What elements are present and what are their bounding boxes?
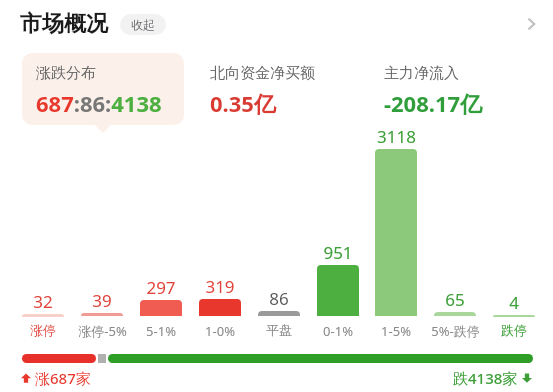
staticText: 1-5%: [381, 322, 411, 340]
button[interactable]: 1-0%: [180, 322, 260, 340]
staticText: 5-1%: [146, 322, 176, 340]
staticText: 0.35亿: [210, 88, 276, 118]
button[interactable]: 主力净流入: [370, 53, 532, 125]
button[interactable]: 涨停: [3, 322, 83, 338]
staticText: 86: [269, 287, 289, 310]
staticText: 北向资金净买额: [210, 64, 315, 83]
button[interactable]: 收起: [120, 14, 166, 35]
staticText: 687:86:4138: [36, 88, 162, 118]
staticText: 涨跌分布: [36, 64, 96, 83]
staticText: 3118: [377, 125, 416, 148]
button[interactable]: 0-1%: [298, 322, 378, 340]
staticText: 跌4138家: [453, 368, 518, 388]
button[interactable]: 1-5%: [356, 322, 436, 340]
staticText: 32: [33, 290, 53, 313]
staticText: 0-1%: [323, 322, 353, 340]
button[interactable]: 涨停-5%: [62, 322, 142, 340]
staticText: 297: [146, 276, 176, 299]
button[interactable]: 北向资金净买额: [196, 53, 358, 125]
staticText: 涨停: [30, 322, 56, 338]
staticText: 65: [445, 288, 465, 311]
staticText: 主力净流入: [384, 64, 459, 83]
button[interactable]: 5-1%: [121, 322, 201, 340]
staticText: 951: [323, 241, 353, 264]
button[interactable]: 涨跌分布: [22, 53, 184, 125]
staticText: 市场概况: [20, 10, 108, 38]
staticText: -208.17亿: [384, 88, 483, 118]
button[interactable]: 5%-跌停: [415, 322, 495, 340]
staticText: 跌停: [501, 322, 527, 338]
staticText: 319: [205, 275, 235, 298]
staticText: 39: [92, 289, 112, 312]
button[interactable]: 平盘: [239, 322, 319, 338]
staticText: 收起: [131, 17, 155, 32]
staticText: 4: [509, 291, 519, 314]
staticText: 5%-跌停: [431, 322, 480, 340]
button[interactable]: More: [509, 2, 553, 46]
button[interactable]: 跌停: [474, 322, 553, 338]
staticText: 平盘: [266, 322, 292, 338]
staticText: 1-0%: [205, 322, 235, 340]
staticText: 涨停-5%: [78, 322, 127, 340]
staticText: 涨687家: [35, 368, 91, 388]
